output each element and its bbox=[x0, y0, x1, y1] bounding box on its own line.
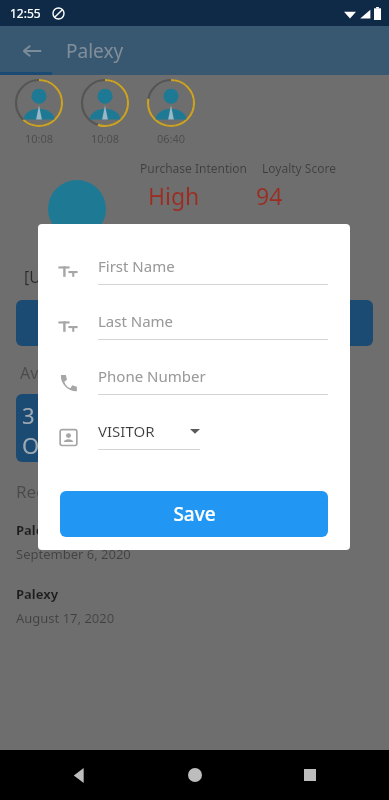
button[interactable]: VISITOR bbox=[38, 413, 350, 465]
button[interactable]: Back bbox=[12, 31, 52, 71]
button[interactable]: Phone Number bbox=[38, 358, 350, 413]
staticText: 10:08 bbox=[25, 131, 54, 146]
staticText: VISITOR bbox=[98, 421, 155, 441]
staticText: [U... bbox=[24, 266, 54, 288]
button[interactable]: Recent apps bbox=[293, 758, 327, 792]
staticText: Last Name bbox=[98, 311, 174, 331]
button[interactable]: Palexy bbox=[0, 521, 389, 563]
staticText: Av bbox=[20, 362, 39, 384]
staticText: Phone Number bbox=[98, 366, 206, 386]
staticText: 10:08 bbox=[91, 131, 120, 146]
staticText: 06:40 bbox=[157, 131, 186, 146]
staticText: First Name bbox=[98, 256, 175, 276]
button[interactable]: Back bbox=[62, 758, 96, 792]
staticText: 94 bbox=[256, 180, 283, 211]
button[interactable]: 10:08 bbox=[80, 78, 130, 146]
staticText: September 6, 2020 bbox=[16, 545, 131, 563]
staticText: Loyalty Score bbox=[262, 160, 336, 176]
button[interactable]: 06:40 bbox=[146, 78, 196, 146]
staticText: Palexy bbox=[16, 585, 59, 603]
staticText: High bbox=[148, 180, 200, 211]
staticText: Palexy bbox=[66, 38, 124, 64]
button[interactable]: Last Name bbox=[38, 303, 350, 358]
staticText: 3 bbox=[22, 400, 35, 430]
button[interactable]: Save bbox=[60, 491, 328, 537]
staticText: Purchase Intention bbox=[140, 160, 248, 176]
button[interactable]: Palexy bbox=[0, 585, 389, 627]
button[interactable] bbox=[16, 300, 373, 346]
staticText: OFF bbox=[22, 430, 63, 460]
staticText: August 17, 2020 bbox=[16, 609, 115, 627]
button[interactable]: 3 bbox=[16, 394, 88, 462]
button[interactable]: 10:08 bbox=[14, 78, 64, 146]
button[interactable]: First Name bbox=[38, 248, 350, 303]
staticText: Recent Activities bbox=[16, 480, 146, 503]
staticText: 12:55 bbox=[10, 5, 41, 21]
button[interactable]: Home bbox=[178, 758, 212, 792]
staticText: Palexy bbox=[16, 521, 59, 539]
staticText: Save bbox=[173, 501, 216, 527]
